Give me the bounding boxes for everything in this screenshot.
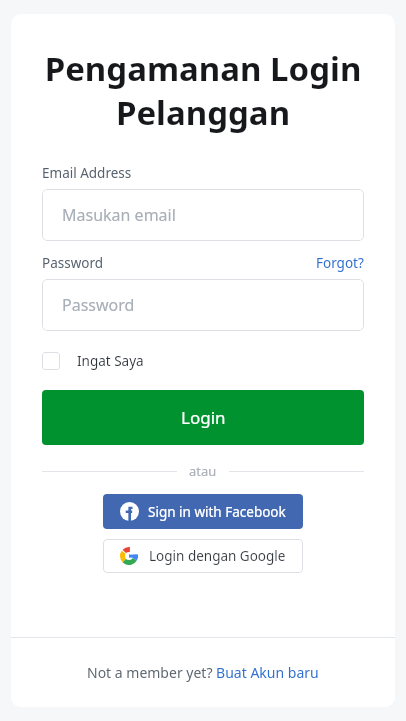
staticText: Sign in with Facebook <box>148 503 286 521</box>
staticText: Login <box>181 406 226 429</box>
button[interactable]: Google <box>103 539 303 573</box>
button[interactable]: Login <box>42 390 364 445</box>
button[interactable]: Not a member yet? Buat Akun baru <box>87 663 319 682</box>
staticText: Login dengan Google <box>149 547 286 565</box>
button[interactable]: Password <box>42 279 364 331</box>
staticText: Email Address <box>42 164 132 182</box>
button[interactable]: Masukan email <box>42 189 364 241</box>
staticText: Masukan email <box>62 204 176 226</box>
other: Google <box>120 547 138 565</box>
button[interactable]: Forgot? <box>316 254 364 272</box>
staticText: atau <box>189 462 217 480</box>
staticText: Password <box>62 294 135 316</box>
button[interactable]: Facebook <box>103 494 303 529</box>
staticText: Ingat Saya <box>77 352 144 370</box>
staticText: Not a member yet? Buat Akun baru <box>87 663 319 682</box>
staticText: Pengamanan Login Pelanggan <box>42 46 364 134</box>
staticText: Password <box>42 254 104 272</box>
button[interactable]: Ingat Saya <box>42 350 144 372</box>
staticText: Forgot? <box>316 254 364 272</box>
other: Facebook <box>120 502 139 521</box>
